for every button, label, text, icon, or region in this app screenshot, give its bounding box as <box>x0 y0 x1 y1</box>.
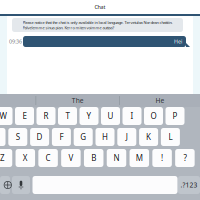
button[interactable]: M <box>130 149 149 167</box>
staticText: Z <box>0 153 5 163</box>
staticText: N <box>113 153 119 163</box>
button[interactable]: X <box>16 149 35 167</box>
button[interactable]: H <box>95 128 114 146</box>
staticText: 09:36 <box>9 38 22 45</box>
staticText: Chat <box>94 3 105 11</box>
button[interactable]: S <box>8 128 27 146</box>
staticText: G <box>80 132 86 142</box>
button[interactable]: Dictate <box>12 176 30 194</box>
staticText: J <box>126 132 128 142</box>
staticText: F <box>59 132 63 142</box>
staticText: C <box>46 153 51 163</box>
staticText: U <box>107 111 113 121</box>
button[interactable]: Y <box>79 107 98 125</box>
button[interactable]: P <box>165 107 184 125</box>
button[interactable]: R <box>36 107 55 125</box>
staticText: He <box>155 96 164 105</box>
staticText: K <box>146 132 151 142</box>
button[interactable]: U <box>101 107 120 125</box>
button[interactable]: Z <box>0 149 12 167</box>
button[interactable]: A <box>0 128 5 146</box>
button[interactable]: V <box>61 149 81 167</box>
staticText: Please notice that the chat is only avai… <box>22 20 172 30</box>
staticText: T <box>65 111 69 121</box>
staticText: Hei <box>174 38 182 45</box>
button[interactable]: B <box>84 149 103 167</box>
button[interactable]: K <box>139 128 158 146</box>
staticText: R <box>43 111 48 121</box>
staticText: .?123 <box>180 181 197 189</box>
button[interactable]: I <box>122 107 141 125</box>
button[interactable]: Space <box>32 176 177 194</box>
button[interactable]: O <box>144 107 163 125</box>
button[interactable]: G <box>74 128 93 146</box>
staticText: Y <box>86 111 91 121</box>
staticText: V <box>68 153 73 163</box>
button[interactable]: .?123 <box>178 176 200 194</box>
staticText: X <box>23 153 28 163</box>
staticText: The <box>72 96 84 105</box>
button[interactable]: F <box>52 128 71 146</box>
button[interactable]: Switch keyboard <box>0 176 10 194</box>
staticText: L <box>168 132 172 142</box>
staticText: ! <box>161 153 163 163</box>
staticText: H <box>102 132 108 142</box>
staticText: W <box>0 111 6 121</box>
button[interactable]: J <box>117 128 136 146</box>
staticText: S <box>16 132 20 142</box>
button[interactable]: C <box>38 149 58 167</box>
button[interactable]: D <box>30 128 49 146</box>
staticText: B <box>91 153 96 163</box>
staticText: M <box>136 153 143 163</box>
button[interactable]: ! <box>152 149 172 167</box>
button[interactable]: N <box>107 149 126 167</box>
staticText: ? <box>183 153 186 163</box>
staticText: P <box>172 111 177 121</box>
button[interactable]: ? <box>175 149 195 167</box>
staticText: D <box>37 132 43 142</box>
staticText: E <box>22 111 26 121</box>
button[interactable]: L <box>161 128 180 146</box>
button[interactable]: T <box>58 107 77 125</box>
staticText: O <box>150 111 156 121</box>
staticText: I <box>130 111 133 121</box>
button[interactable]: Hei <box>23 36 186 47</box>
button[interactable]: E <box>15 107 34 125</box>
button[interactable]: W <box>0 107 12 125</box>
